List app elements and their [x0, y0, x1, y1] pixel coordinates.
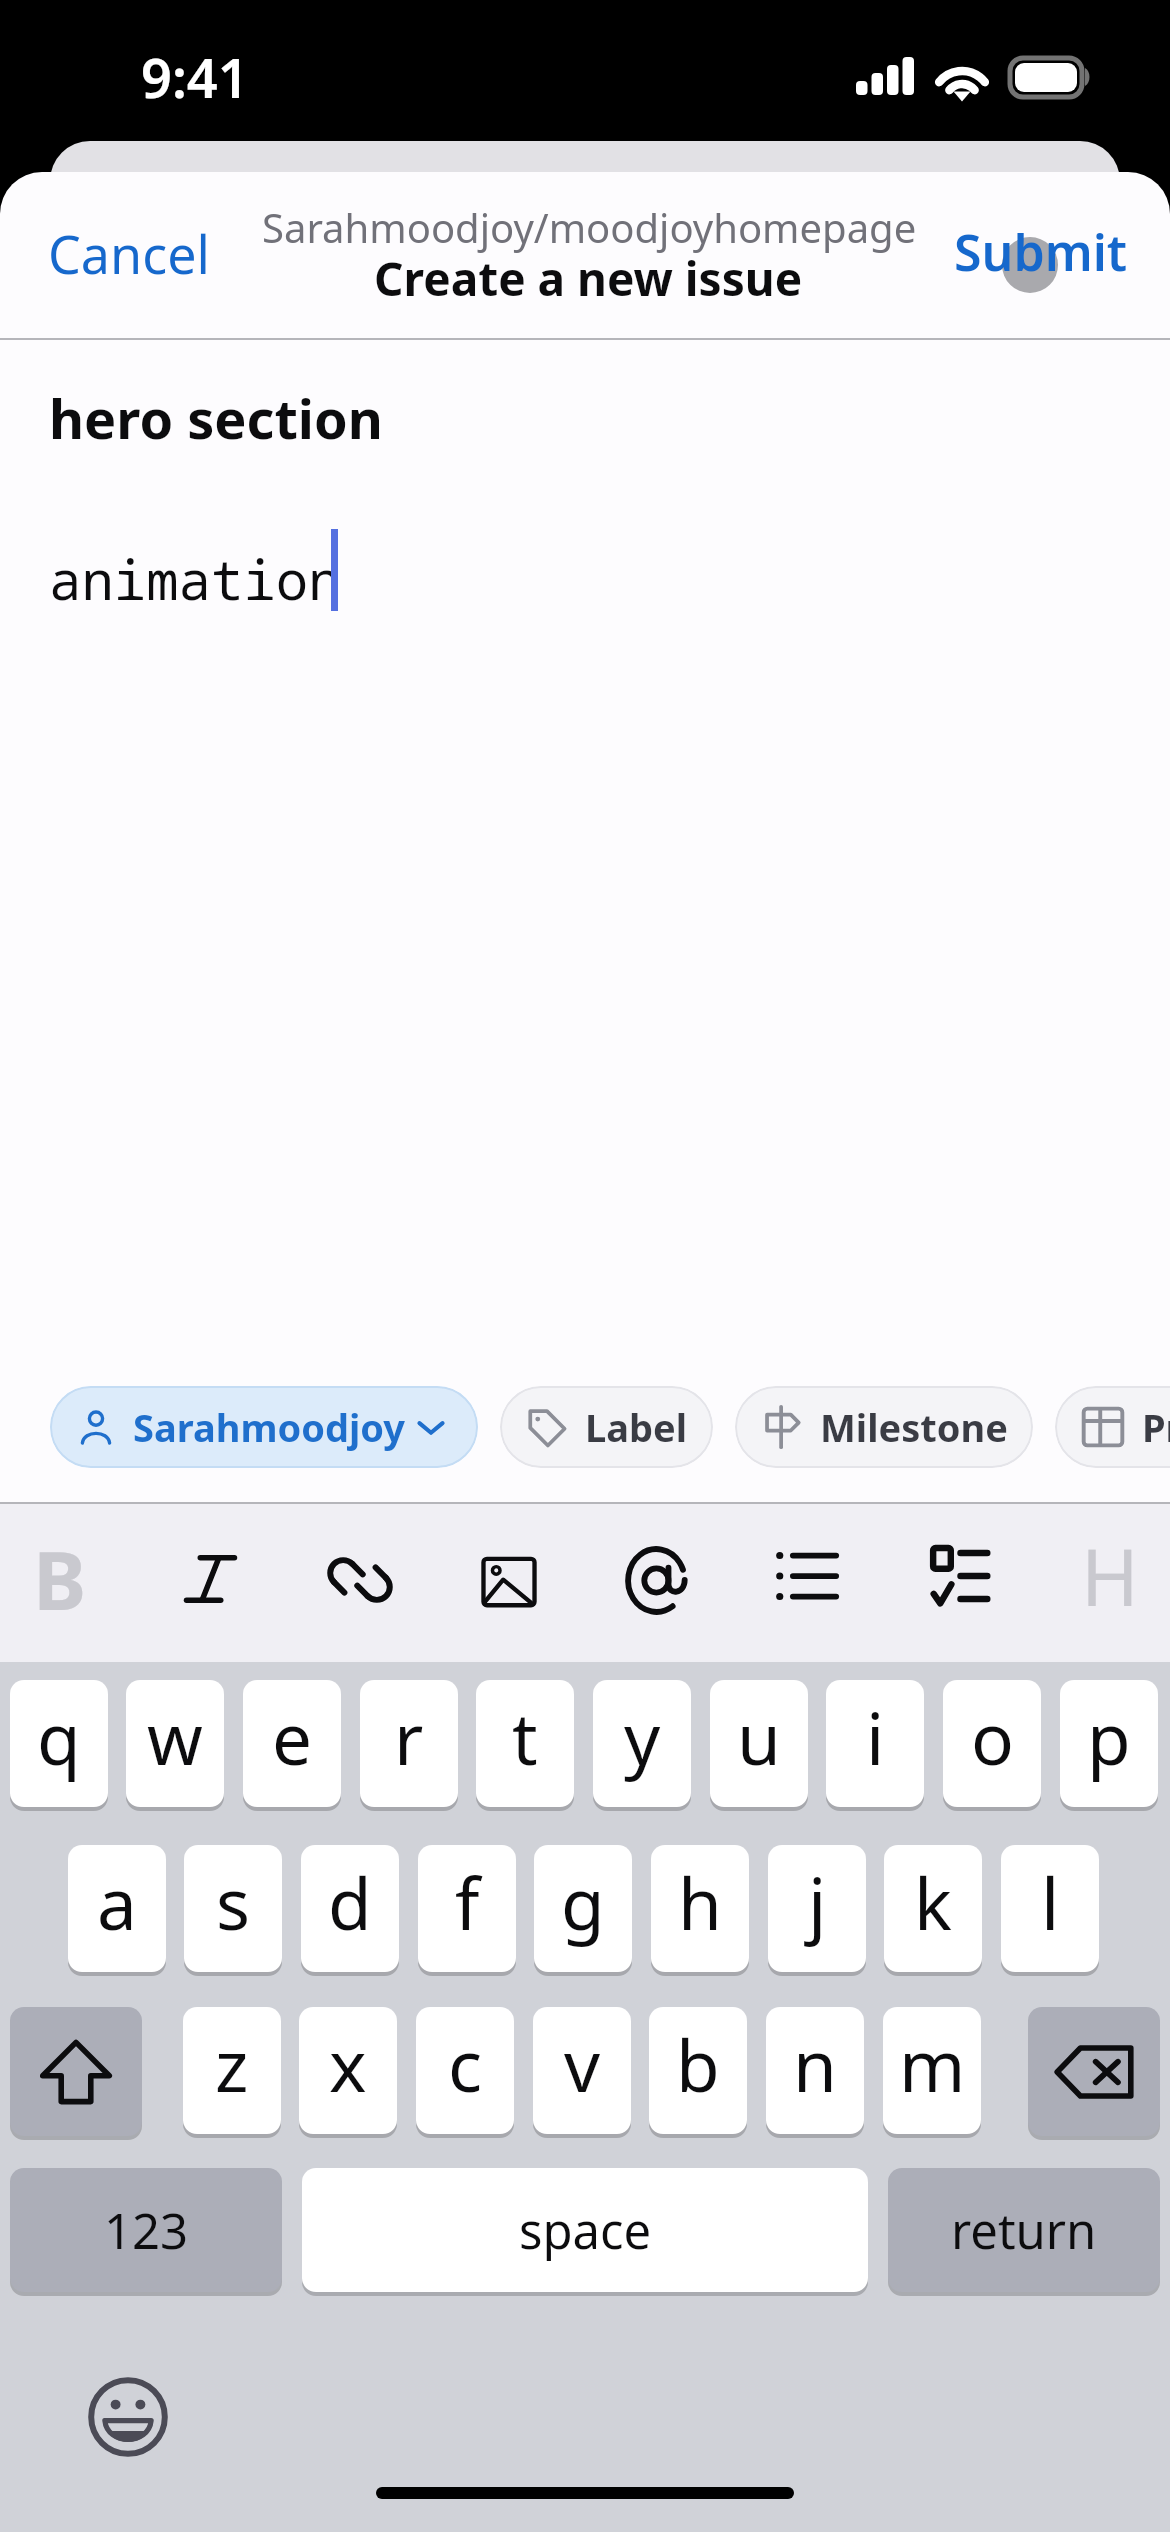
button[interactable]: Italic: [185, 1555, 236, 1603]
staticText: x: [329, 2016, 367, 2113]
button[interactable]: d: [301, 1845, 399, 1972]
button[interactable]: q: [10, 1680, 108, 1807]
staticText: t: [512, 1689, 538, 1786]
staticText: h: [678, 1854, 722, 1951]
button[interactable]: m: [883, 2007, 981, 2134]
button[interactable]: t: [476, 1680, 574, 1807]
button[interactable]: Space: [302, 2168, 868, 2292]
staticText: Projects: [1142, 1401, 1170, 1453]
button[interactable]: n: [766, 2007, 864, 2134]
button[interactable]: o: [943, 1680, 1041, 1807]
staticText: d: [328, 1854, 372, 1951]
staticText: hero section: [49, 381, 383, 455]
staticText: o: [971, 1689, 1014, 1786]
button[interactable]: l: [1001, 1845, 1099, 1972]
staticText: Label: [585, 1401, 688, 1453]
staticText: c: [448, 2016, 483, 2113]
staticText: p: [1087, 1689, 1131, 1786]
button[interactable]: k: [884, 1845, 982, 1972]
staticText: space: [519, 2197, 652, 2264]
button[interactable]: j: [768, 1845, 866, 1972]
staticText: animation: [49, 542, 341, 616]
button[interactable]: c: [416, 2007, 514, 2134]
button[interactable]: Link: [325, 1545, 395, 1615]
button[interactable]: Bulleted list: [777, 1551, 838, 1601]
staticText: s: [216, 1854, 251, 1951]
staticText: q: [37, 1689, 81, 1786]
staticText: y: [624, 1689, 661, 1786]
button[interactable]: Image: [480, 1553, 538, 1611]
button[interactable]: Task list: [932, 1548, 989, 1604]
staticText: i: [866, 1689, 885, 1786]
button[interactable]: w: [126, 1680, 224, 1807]
button[interactable]: b: [649, 2007, 747, 2134]
staticText: f: [455, 1854, 480, 1951]
button[interactable]: a: [68, 1845, 166, 1972]
button[interactable]: r: [360, 1680, 458, 1807]
button[interactable]: u: [710, 1680, 808, 1807]
staticText: z: [215, 2016, 249, 2113]
button[interactable]: Return: [888, 2168, 1160, 2292]
staticText: w: [147, 1689, 203, 1786]
button[interactable]: Cancel: [0, 204, 240, 303]
button[interactable]: H: [1081, 1523, 1139, 1629]
staticText: g: [561, 1854, 605, 1951]
staticText: return: [951, 2197, 1097, 2264]
staticText: a: [97, 1854, 137, 1951]
button[interactable]: f: [418, 1845, 516, 1972]
staticText: m: [899, 2016, 966, 2113]
button[interactable]: y: [593, 1680, 691, 1807]
staticText: 9:41: [141, 40, 249, 114]
button[interactable]: Sarahmoodjoy: [50, 1386, 478, 1468]
button[interactable]: e: [243, 1680, 341, 1807]
button[interactable]: s: [184, 1845, 282, 1972]
button[interactable]: Numbers: [10, 2168, 282, 2292]
staticText: e: [272, 1689, 313, 1786]
button[interactable]: Backspace: [1028, 2007, 1160, 2136]
button[interactable]: g: [534, 1845, 632, 1972]
staticText: 123: [104, 2197, 189, 2264]
button[interactable]: Projects: [1055, 1386, 1170, 1468]
staticText: Sarahmoodjoy/moodjoyhomepage: [262, 200, 917, 254]
button[interactable]: Milestone: [735, 1386, 1033, 1468]
button[interactable]: i: [826, 1680, 924, 1807]
staticText: Sarahmoodjoy: [133, 1401, 405, 1453]
button[interactable]: x: [299, 2007, 397, 2134]
button[interactable]: Shift: [10, 2007, 142, 2136]
staticText: k: [914, 1854, 952, 1951]
staticText: l: [1041, 1854, 1060, 1951]
staticText: Create a new issue: [374, 247, 803, 310]
button[interactable]: Submit: [924, 204, 1170, 300]
button[interactable]: v: [533, 2007, 631, 2134]
staticText: v: [564, 2016, 601, 2113]
button[interactable]: Label: [500, 1386, 713, 1468]
button[interactable]: Mention: [625, 1546, 694, 1615]
button[interactable]: h: [651, 1845, 749, 1972]
staticText: Milestone: [820, 1401, 1008, 1453]
staticText: j: [808, 1854, 827, 1951]
staticText: b: [676, 2016, 720, 2113]
button[interactable]: Emoji: [88, 2377, 168, 2457]
staticText: r: [394, 1689, 424, 1786]
button[interactable]: B: [33, 1524, 87, 1633]
button[interactable]: z: [183, 2007, 281, 2134]
button[interactable]: p: [1060, 1680, 1158, 1807]
staticText: u: [737, 1689, 781, 1786]
staticText: n: [793, 2016, 837, 2113]
